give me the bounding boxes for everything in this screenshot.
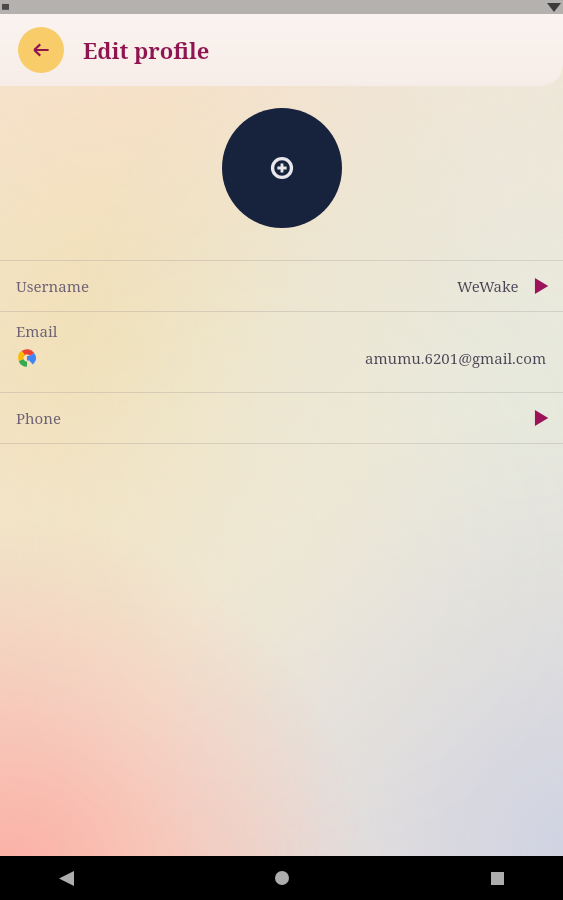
button[interactable]: Username	[0, 261, 563, 311]
staticText: Edit profile	[83, 35, 210, 65]
button[interactable]: Email	[0, 312, 563, 392]
button[interactable]: Recents	[477, 858, 517, 898]
button[interactable]: Back	[18, 27, 64, 73]
button[interactable]: Change profile photo	[222, 108, 342, 228]
staticText: Email	[16, 321, 58, 341]
staticText: amumu.6201@gmail.com	[365, 348, 547, 368]
button[interactable]: Home	[262, 858, 302, 898]
button[interactable]: Phone	[0, 393, 563, 443]
staticText: Username	[16, 276, 89, 296]
staticText: Phone	[16, 408, 61, 428]
staticText: WeWake	[457, 276, 519, 296]
button[interactable]: Back	[46, 858, 86, 898]
